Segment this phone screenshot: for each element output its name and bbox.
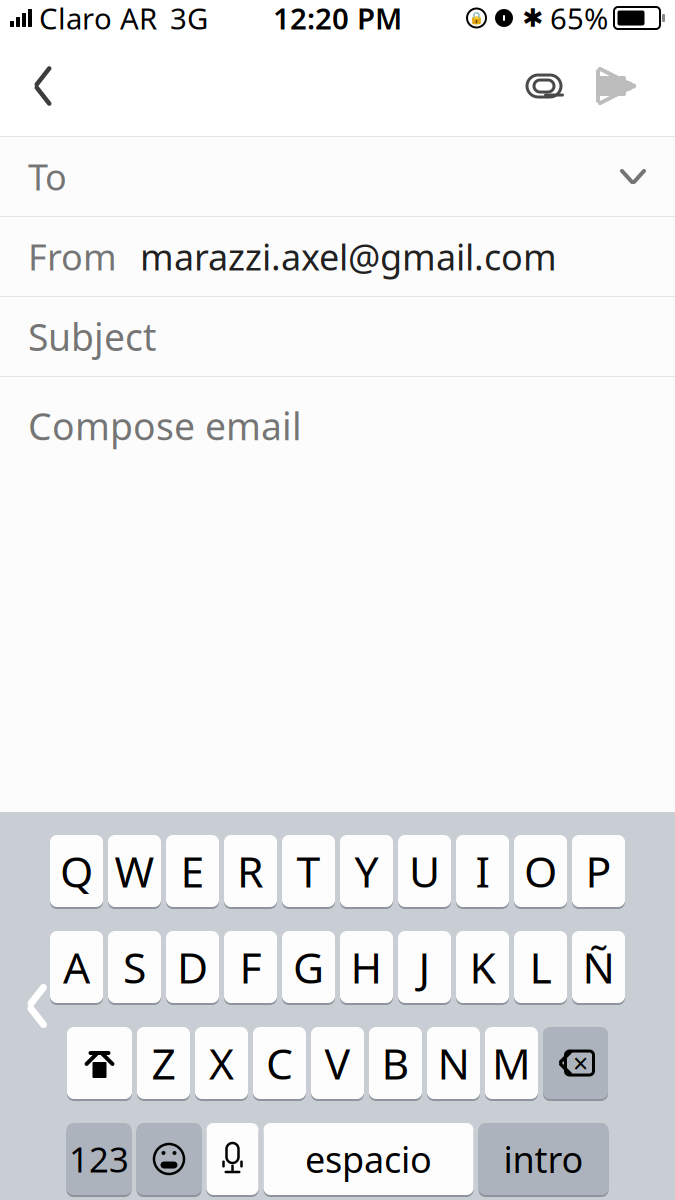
staticText: Compose email: [28, 401, 302, 451]
staticText: G: [293, 939, 324, 995]
button[interactable]: E: [166, 834, 219, 908]
staticText: ×: [573, 1045, 588, 1081]
staticText: S: [123, 939, 146, 995]
button[interactable]: B: [369, 1026, 422, 1100]
staticText: 123: [69, 1136, 129, 1182]
button[interactable]: V: [311, 1026, 364, 1100]
staticText: C: [266, 1035, 293, 1091]
button[interactable]: H: [340, 930, 393, 1004]
staticText: 12:20 PM: [273, 0, 402, 37]
staticText: K: [469, 939, 495, 995]
button[interactable]: T: [282, 834, 335, 908]
staticText: W: [114, 843, 154, 899]
button[interactable]: A: [50, 930, 103, 1004]
staticText: X: [209, 1035, 234, 1091]
staticText: Z: [151, 1035, 175, 1091]
button[interactable]: S: [108, 930, 161, 1004]
button[interactable]: R: [224, 834, 277, 908]
button[interactable]: Back: [6, 49, 80, 123]
staticText: To: [28, 153, 67, 200]
staticText: H: [350, 939, 382, 995]
button[interactable]: C: [253, 1026, 306, 1100]
staticText: Ñ: [582, 939, 614, 995]
staticText: J: [418, 939, 430, 995]
staticText: intro: [503, 1135, 583, 1183]
staticText: R: [237, 843, 264, 899]
button[interactable]: Attach file: [507, 49, 581, 123]
button[interactable]: X: [195, 1026, 248, 1100]
button[interactable]: L: [514, 930, 567, 1004]
button[interactable]: D: [166, 930, 219, 1004]
staticText: From: [28, 233, 117, 280]
staticText: U: [409, 843, 440, 899]
staticText: 3G: [170, 0, 208, 37]
staticText: P: [585, 843, 611, 899]
staticText: A: [63, 939, 90, 995]
staticText: E: [180, 843, 204, 899]
button[interactable]: F: [224, 930, 277, 1004]
button[interactable]: Subject: [0, 297, 675, 377]
staticText: N: [437, 1035, 469, 1091]
button[interactable]: K: [456, 930, 509, 1004]
button[interactable]: From: [0, 217, 675, 297]
button[interactable]: Dictate: [206, 1122, 258, 1196]
staticText: espacio: [305, 1135, 432, 1183]
button[interactable]: Q: [50, 834, 103, 908]
button[interactable]: Y: [340, 834, 393, 908]
button[interactable]: Delete: [543, 1026, 608, 1100]
button[interactable]: W: [108, 834, 161, 908]
button[interactable]: Shift: [67, 1026, 132, 1100]
button[interactable]: O: [514, 834, 567, 908]
button[interactable]: intro: [478, 1122, 608, 1196]
button[interactable]: N: [427, 1026, 480, 1100]
button[interactable]: G: [282, 930, 335, 1004]
button[interactable]: Compose email: [0, 377, 675, 812]
staticText: Subject: [28, 312, 156, 361]
button[interactable]: M: [485, 1026, 538, 1100]
staticText: marazzi.axel@gmail.com: [140, 233, 557, 280]
staticText: V: [324, 1035, 350, 1091]
staticText: 🔒: [469, 11, 484, 25]
button[interactable]: U: [398, 834, 451, 908]
button[interactable]: P: [572, 834, 625, 908]
button[interactable]: espacio: [263, 1122, 473, 1196]
staticText: D: [177, 939, 208, 995]
staticText: O: [524, 843, 557, 899]
staticText: Y: [354, 843, 378, 899]
button[interactable]: 123: [66, 1122, 131, 1196]
button[interactable]: I: [456, 834, 509, 908]
staticText: F: [239, 939, 261, 995]
button[interactable]: Emoji: [136, 1122, 201, 1196]
button[interactable]: Send: [581, 49, 655, 123]
button[interactable]: To: [0, 137, 675, 217]
button[interactable]: Z: [137, 1026, 190, 1100]
staticText: M: [492, 1035, 531, 1091]
staticText: T: [296, 843, 320, 899]
staticText: Q: [60, 843, 93, 899]
staticText: ✱: [522, 4, 543, 32]
staticText: Claro AR: [39, 0, 157, 37]
staticText: I: [475, 843, 489, 899]
staticText: B: [381, 1035, 409, 1091]
button[interactable]: Ñ: [572, 930, 625, 1004]
button[interactable]: J: [398, 930, 451, 1004]
staticText: L: [529, 939, 551, 995]
staticText: 65%: [550, 0, 608, 37]
